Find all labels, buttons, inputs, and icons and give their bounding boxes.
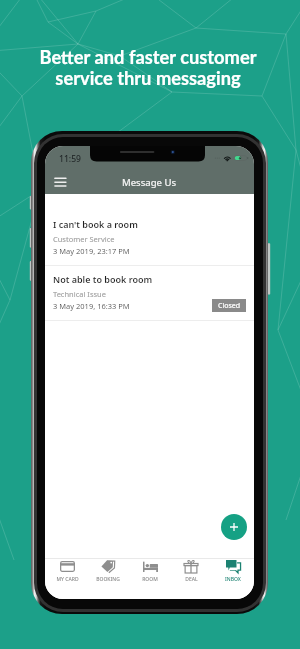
staticText: Technical Issue bbox=[53, 289, 106, 299]
staticText: 3 May 2019, 16:33 PM bbox=[53, 301, 130, 311]
staticText: 3 May 2019, 23:17 PM bbox=[53, 246, 130, 256]
button[interactable]: Not able to book room bbox=[45, 266, 254, 320]
button[interactable]: Closed bbox=[212, 299, 246, 312]
staticText: ROOM bbox=[142, 576, 158, 583]
button[interactable]: MY CARD bbox=[47, 559, 87, 599]
staticText: Customer Service bbox=[53, 234, 115, 244]
staticText: BOOKING bbox=[96, 576, 120, 583]
button[interactable]: INBOX bbox=[213, 559, 253, 599]
button[interactable]: Menu bbox=[52, 173, 69, 190]
button[interactable]: I can't book a room bbox=[45, 211, 254, 265]
staticText: Not able to book room bbox=[53, 273, 153, 285]
button[interactable]: BOOKING bbox=[88, 559, 128, 599]
staticText: Closed bbox=[218, 301, 241, 311]
button[interactable]: ROOM bbox=[130, 559, 170, 599]
staticText: INBOX bbox=[225, 576, 241, 583]
staticText: MY CARD bbox=[56, 576, 79, 583]
button[interactable]: DEAL bbox=[171, 559, 211, 599]
staticText: 11:59 bbox=[59, 153, 82, 165]
staticText: DEAL bbox=[185, 576, 198, 583]
button[interactable]: New message bbox=[221, 514, 247, 540]
staticText: Better and faster customer service thru … bbox=[0, 46, 298, 89]
staticText: Message Us bbox=[122, 176, 177, 189]
staticText: I can't book a room bbox=[53, 218, 138, 230]
